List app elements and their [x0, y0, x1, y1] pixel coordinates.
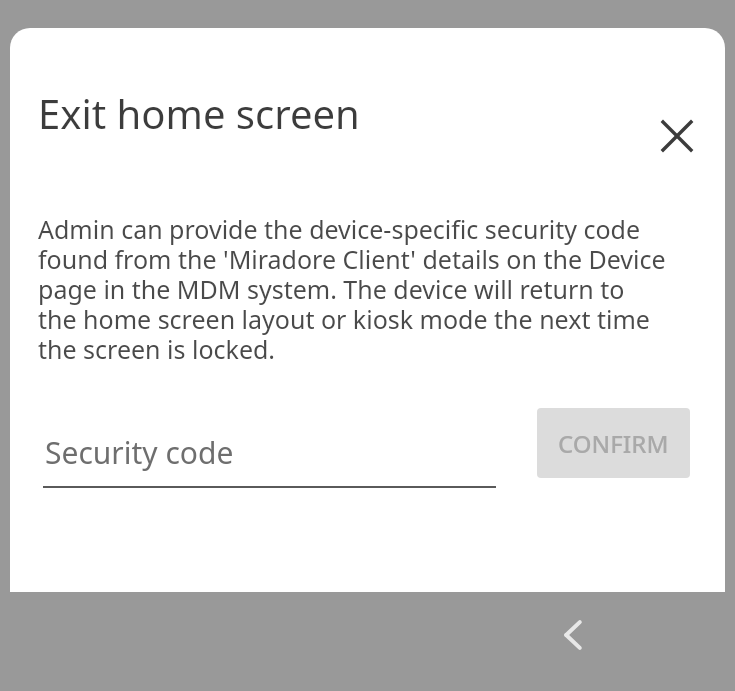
button[interactable]: CONFIRM	[537, 408, 690, 478]
staticText: Admin can provide the device-specific se…	[38, 212, 668, 366]
staticText: Exit home screen	[38, 86, 360, 140]
button[interactable]: Security code	[43, 420, 498, 488]
button[interactable]: Back	[537, 599, 609, 671]
button[interactable]: Close	[643, 102, 711, 170]
staticText: CONFIRM	[558, 427, 669, 460]
staticText: Security code	[45, 432, 234, 473]
